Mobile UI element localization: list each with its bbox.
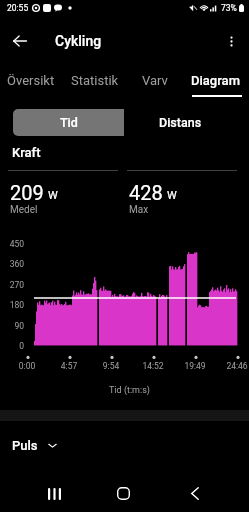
staticText: 450 [0,239,24,249]
button[interactable]: Tid [13,109,124,136]
staticText: 14:52 [133,361,173,371]
staticText: Tid (t:m:s) [5,385,249,396]
button[interactable]: Back [8,29,32,53]
button[interactable]: Varv [124,59,186,98]
staticText: Översikt [7,73,55,88]
button[interactable]: Recents [43,482,66,505]
button[interactable]: Översikt [0,59,62,98]
staticText: 4:57 [49,361,89,371]
button[interactable]: Diagram [184,59,246,98]
staticText: Tid [60,115,78,130]
staticText: Diagram [191,73,240,88]
staticText: Varv [142,73,168,88]
staticText: Puls [12,438,38,453]
button[interactable]: Back [183,482,206,505]
staticText: Medel [10,204,38,216]
staticText: 0:00 [7,361,47,371]
staticText: W [167,189,177,202]
staticText: W [48,189,58,202]
staticText: Kraft [12,147,41,160]
staticText: 73% [221,3,237,13]
staticText: 0 [0,341,24,351]
button[interactable]: More options [219,29,243,53]
staticText: 180 [0,300,24,310]
staticText: Max [129,204,149,216]
button[interactable]: Distans [124,109,236,136]
staticText: 9:54 [91,361,131,371]
button[interactable]: Puls [0,438,249,453]
staticText: Distans [159,115,202,130]
staticText: 209 [10,181,44,204]
staticText: Cykling [55,33,102,49]
staticText: Statistik [71,73,119,88]
staticText: 360 [0,259,24,269]
staticText: 24:46 [217,361,249,371]
staticText: 90 [0,321,24,331]
staticText: 270 [0,280,24,290]
button[interactable]: Statistik [64,59,126,98]
staticText: 20:55 [7,3,29,13]
staticText: 428 [129,181,163,204]
staticText: 19:49 [175,361,215,371]
button[interactable]: Home [112,482,135,505]
